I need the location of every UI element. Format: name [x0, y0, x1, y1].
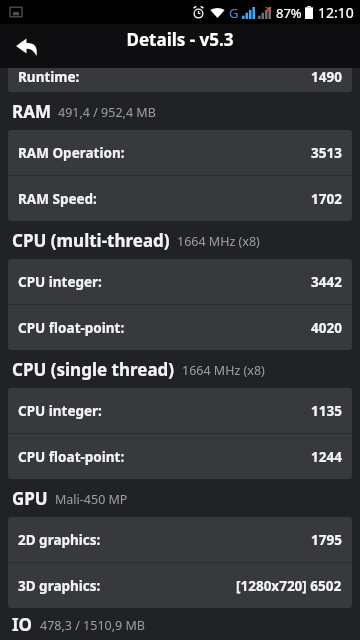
- staticText: 491,4 / 952,4 MB: [58, 104, 156, 121]
- button[interactable]: 3D graphics:: [8, 563, 352, 608]
- staticText: CPU float-point:: [18, 319, 125, 337]
- button[interactable]: Back: [6, 25, 48, 67]
- staticText: Mali-450 MP: [55, 491, 128, 508]
- staticText: 1664 MHz (x8): [177, 233, 260, 250]
- button[interactable]: RAM Operation:: [8, 130, 352, 175]
- staticText: CPU (single thread): [12, 358, 175, 381]
- button[interactable]: CPU float-point:: [8, 305, 352, 350]
- staticText: 478,3 / 1510,9 MB: [40, 617, 145, 634]
- staticText: 1490: [311, 68, 342, 86]
- staticText: Details - v5.3: [126, 28, 234, 51]
- staticText: G: [229, 4, 239, 22]
- staticText: 1664 MHz (x8): [182, 362, 265, 379]
- staticText: RAM Speed:: [18, 190, 97, 208]
- staticText: 4020: [311, 319, 342, 337]
- button[interactable]: CPU integer:: [8, 388, 352, 433]
- staticText: 3513: [311, 144, 342, 162]
- staticText: CPU integer:: [18, 273, 102, 291]
- button[interactable]: CPU integer:: [8, 259, 352, 304]
- staticText: RAM Operation:: [18, 144, 125, 162]
- staticText: 2D graphics:: [18, 531, 101, 549]
- staticText: CPU (multi-thread): [12, 229, 170, 252]
- button[interactable]: CPU float-point:: [8, 434, 352, 479]
- staticText: 1244: [311, 448, 342, 466]
- staticText: 12:10: [318, 3, 354, 22]
- staticText: Runtime:: [18, 68, 80, 86]
- staticText: 1135: [311, 402, 342, 420]
- staticText: RAM: [12, 100, 51, 123]
- staticText: GPU: [12, 487, 48, 510]
- staticText: CPU float-point:: [18, 448, 125, 466]
- staticText: 3442: [311, 273, 342, 291]
- button[interactable]: RAM Speed:: [8, 176, 352, 221]
- staticText: 1795: [311, 531, 342, 549]
- staticText: [1280x720] 6502: [236, 577, 342, 595]
- staticText: 3D graphics:: [18, 577, 101, 595]
- staticText: CPU integer:: [18, 402, 102, 420]
- staticText: 87%: [276, 4, 302, 22]
- button[interactable]: 2D graphics:: [8, 517, 352, 562]
- button[interactable]: Runtime:: [8, 68, 352, 92]
- staticText: IO: [12, 613, 33, 636]
- staticText: 1702: [311, 190, 342, 208]
